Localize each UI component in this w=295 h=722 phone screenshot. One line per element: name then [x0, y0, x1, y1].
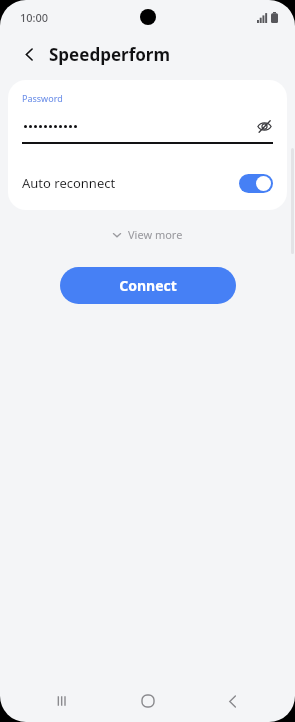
button[interactable]: Back — [14, 39, 44, 69]
staticText: 10:00 — [20, 10, 49, 25]
button[interactable]: Connect — [60, 267, 236, 304]
button[interactable]: Recent apps — [41, 680, 85, 722]
button[interactable]: Back — [210, 680, 254, 722]
staticText: Speedperform — [49, 43, 171, 66]
staticText: Auto reconnect — [22, 174, 116, 192]
button[interactable]: View more — [102, 222, 193, 247]
button[interactable]: Show password — [8, 114, 287, 138]
button[interactable]: Home — [126, 680, 170, 722]
staticText: Connect — [119, 276, 177, 295]
staticText: Password — [22, 92, 63, 104]
button[interactable]: Auto reconnect — [8, 160, 287, 206]
staticText: View more — [128, 227, 183, 242]
button[interactable]: Auto reconnect toggle — [239, 174, 273, 193]
button[interactable]: Show password — [253, 115, 275, 137]
